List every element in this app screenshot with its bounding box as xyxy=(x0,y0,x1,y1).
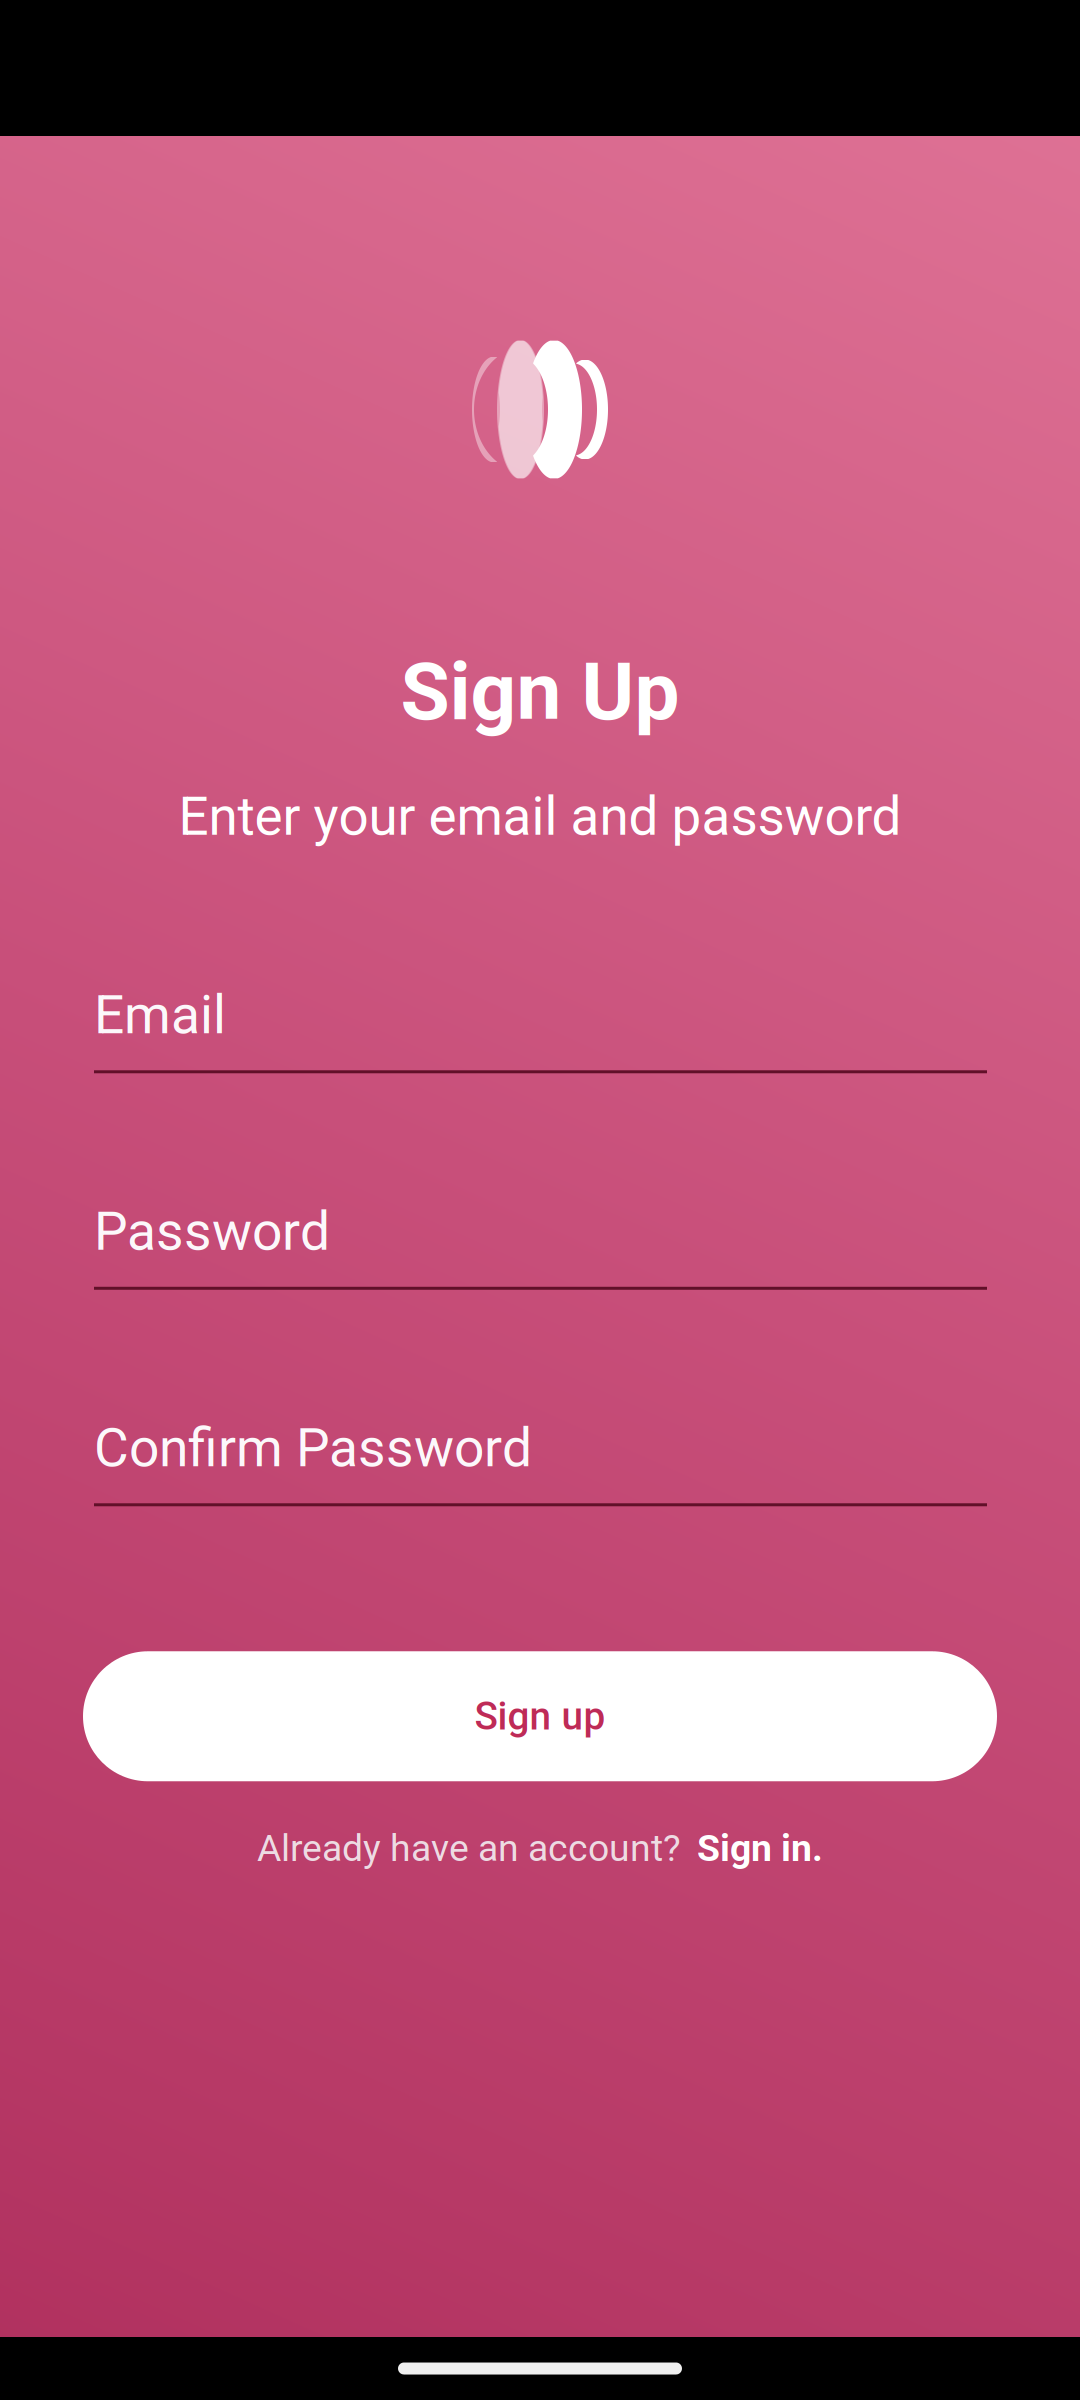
staticText: Sign up xyxy=(474,1694,605,1739)
staticText: Password xyxy=(94,1200,330,1263)
button[interactable]: Already have an account? xyxy=(239,1814,841,1882)
staticText: Already have an account? xyxy=(257,1826,681,1870)
staticText: Confirm Password xyxy=(94,1417,532,1479)
staticText: Email xyxy=(94,984,226,1046)
staticText: Sign in. xyxy=(697,1826,823,1870)
staticText: Enter your email and password xyxy=(178,786,901,848)
staticText: Sign Up xyxy=(400,645,679,739)
button[interactable]: Sign up xyxy=(83,1651,997,1781)
